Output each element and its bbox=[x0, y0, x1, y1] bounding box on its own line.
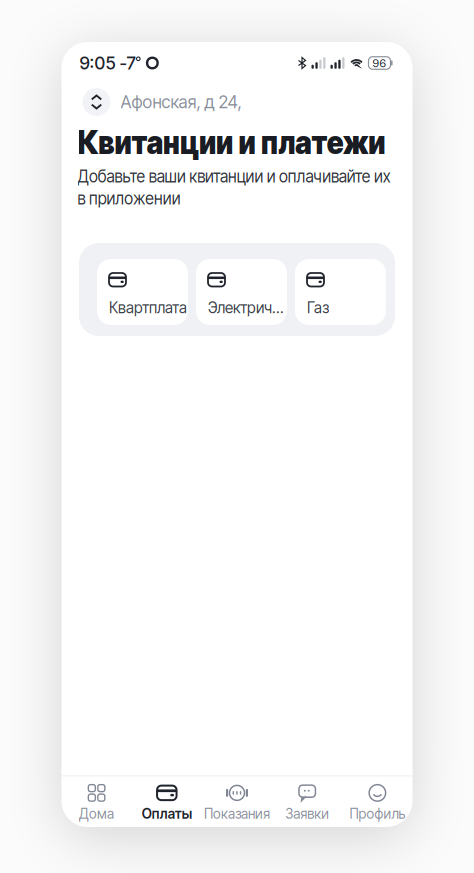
button[interactable]: Выбрать адрес bbox=[82, 88, 110, 116]
staticText: Квитанции и платежи bbox=[77, 123, 419, 162]
button[interactable]: Заявки bbox=[272, 784, 342, 822]
staticText: Электрич... bbox=[208, 299, 284, 317]
staticText: Заявки bbox=[285, 805, 329, 822]
button[interactable]: Дома bbox=[61, 784, 132, 822]
button[interactable]: Показания bbox=[202, 784, 272, 822]
button[interactable]: Профиль bbox=[342, 784, 412, 822]
button[interactable]: Газ bbox=[295, 259, 386, 325]
staticText: Квартплата bbox=[109, 299, 187, 317]
staticText: -7 bbox=[115, 52, 135, 74]
staticText: Оплаты bbox=[142, 805, 192, 822]
button[interactable]: Афонская, д 24, bbox=[120, 91, 241, 112]
staticText: 96 bbox=[372, 56, 386, 70]
button[interactable]: Электрич... bbox=[196, 259, 287, 325]
staticText: Добавьте ваши квитанции и оплачивайте их… bbox=[77, 165, 433, 209]
staticText: Афонская, д 24, bbox=[120, 91, 241, 112]
staticText: 9:05 bbox=[79, 52, 115, 74]
staticText: Дома bbox=[79, 805, 114, 822]
staticText: Газ bbox=[307, 299, 329, 317]
button[interactable]: Оплаты bbox=[132, 784, 202, 822]
staticText: Показания bbox=[204, 805, 270, 822]
button[interactable]: Квартплата bbox=[97, 259, 188, 325]
staticText: Профиль bbox=[349, 805, 405, 822]
